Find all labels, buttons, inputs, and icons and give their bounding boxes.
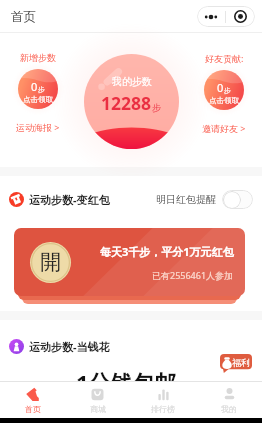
staticText: 明日红包提醒 <box>156 193 216 206</box>
button[interactable]: 商城 <box>65 382 130 418</box>
staticText: 12288 <box>101 91 152 115</box>
staticText: 点击领取 <box>209 96 239 105</box>
button[interactable]: 福利 <box>220 354 252 373</box>
staticText: 首页 <box>11 9 36 25</box>
button[interactable]: 排行榜 <box>130 382 196 418</box>
button[interactable]: 明日红包提醒 <box>156 190 253 209</box>
staticText: 步 <box>224 86 231 95</box>
staticText: 每天3千步，平分1万元红包 <box>100 244 234 259</box>
staticText: 已有2556461人参加 <box>152 269 234 281</box>
button[interactable]: Close mini program <box>226 6 255 27</box>
staticText: 福利 <box>232 357 250 368</box>
staticText: 步 <box>152 102 162 114</box>
staticText: 我的步数 <box>112 75 152 88</box>
staticText: 首页 <box>25 404 41 414</box>
staticText: 运动步数-变红包 <box>29 192 110 207</box>
button[interactable]: 0 <box>198 64 250 116</box>
button[interactable]: 运动海报 > <box>16 121 60 133</box>
button[interactable]: 我的 <box>196 382 262 418</box>
staticText: 新增步数 <box>20 52 56 63</box>
button[interactable]: 開 <box>14 228 245 296</box>
staticText: 排行榜 <box>151 404 175 414</box>
staticText: 步 <box>38 85 45 94</box>
staticText: 好友贡献: <box>205 52 244 64</box>
staticText: 商城 <box>90 404 106 414</box>
button[interactable]: 0 <box>12 63 64 115</box>
button[interactable]: 邀请好友 > <box>202 122 246 134</box>
staticText: 1分钱包邮 <box>76 367 177 397</box>
staticText: 0 <box>217 80 224 95</box>
button[interactable]: 首页 <box>0 382 65 418</box>
staticText: 開 <box>40 249 61 275</box>
button[interactable]: More options <box>197 6 225 27</box>
staticText: 我的 <box>221 404 237 414</box>
staticText: 点击领取 <box>23 95 53 104</box>
staticText: 运动步数-当钱花 <box>29 339 110 354</box>
staticText: 0 <box>31 79 38 94</box>
